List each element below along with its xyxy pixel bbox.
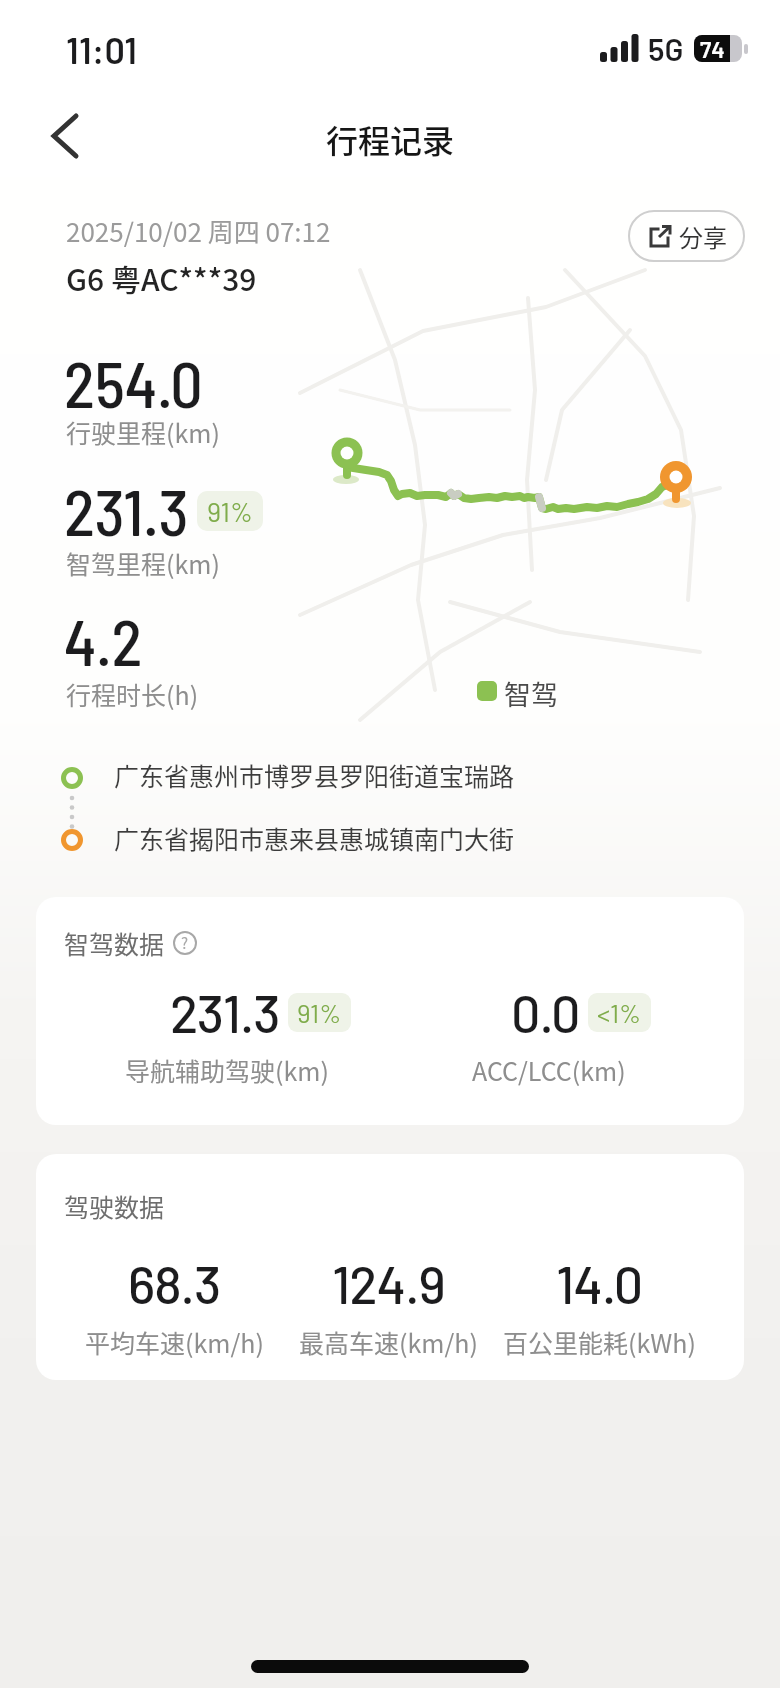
staticText: 124.9	[332, 1252, 445, 1314]
staticText: 11:01	[66, 28, 137, 71]
staticText: 最高车速(km/h)	[299, 1324, 478, 1360]
staticText: 91%	[207, 495, 253, 527]
staticText: 2025/10/02 周四 07:12	[66, 212, 331, 250]
staticText: 广东省惠州市博罗县罗阳街道宝瑞路	[114, 757, 515, 793]
staticText: 5G	[648, 30, 684, 67]
staticText: ?	[181, 932, 189, 954]
button[interactable]: 分享	[628, 210, 745, 262]
staticText: 广东省揭阳市惠来县惠城镇南门大街	[114, 820, 515, 856]
staticText: 14.0	[556, 1252, 643, 1314]
staticText: 91%	[297, 997, 342, 1028]
staticText: 行程时长(h)	[66, 676, 199, 712]
staticText: 驾驶数据	[64, 1188, 165, 1224]
staticText: 68.3	[128, 1252, 221, 1314]
staticText: 74	[700, 35, 725, 62]
staticText: 231.3	[170, 981, 280, 1043]
staticText: 行程记录	[326, 116, 455, 162]
staticText: 百公里能耗(kWh)	[503, 1324, 696, 1360]
staticText: 导航辅助驾驶(km)	[125, 1052, 329, 1088]
staticText: 平均车速(km/h)	[85, 1324, 264, 1360]
staticText: <1%	[597, 997, 642, 1028]
staticText: G6 粤AC***39	[66, 256, 257, 299]
staticText: 分享	[679, 219, 727, 254]
staticText: ACC/LCC(km)	[472, 1052, 626, 1088]
staticText: 智驾里程(km)	[66, 545, 220, 581]
staticText: 4.2	[64, 602, 143, 679]
button[interactable]: ?	[173, 931, 197, 955]
button[interactable]	[38, 106, 94, 166]
staticText: 254.0	[64, 344, 203, 421]
staticText: 行驶里程(km)	[66, 414, 220, 450]
staticText: 0.0	[511, 981, 580, 1043]
staticText: 智驾	[504, 674, 558, 713]
staticText: 智驾数据	[64, 925, 165, 961]
staticText: 231.3	[64, 472, 189, 549]
